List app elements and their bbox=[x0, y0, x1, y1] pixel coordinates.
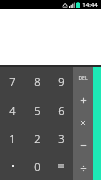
button[interactable]: 7 bbox=[0, 67, 25, 96]
staticText: 9 bbox=[58, 74, 65, 89]
button[interactable]: 3 bbox=[49, 124, 73, 152]
button[interactable]: Plus bbox=[73, 89, 93, 111]
staticText: 7 bbox=[9, 74, 16, 89]
button[interactable]: 0 bbox=[25, 152, 49, 180]
button[interactable]: Minus bbox=[73, 134, 93, 157]
staticText: 14:44 bbox=[82, 1, 98, 9]
button[interactable]: 5 bbox=[25, 96, 49, 124]
staticText: 6 bbox=[58, 103, 65, 118]
staticText: 3 bbox=[58, 131, 65, 146]
staticText: 5 bbox=[34, 103, 41, 118]
button[interactable] bbox=[49, 152, 73, 180]
staticText: 4 bbox=[9, 103, 16, 118]
staticText: 8 bbox=[34, 74, 41, 89]
button[interactable]: Divide bbox=[73, 157, 93, 180]
button[interactable] bbox=[0, 152, 25, 180]
button[interactable]: 6 bbox=[49, 96, 73, 124]
staticText: 2 bbox=[34, 131, 41, 146]
button[interactable]: 1 bbox=[0, 124, 25, 152]
button[interactable]: 9 bbox=[49, 67, 73, 96]
staticText: 1 bbox=[9, 131, 16, 146]
button[interactable]: 8 bbox=[25, 67, 49, 96]
button[interactable]: Delete bbox=[73, 67, 93, 89]
button[interactable]: Multiply bbox=[73, 111, 93, 134]
staticText: DEL bbox=[78, 75, 88, 82]
staticText: 0 bbox=[34, 159, 41, 174]
button[interactable]: 2 bbox=[25, 124, 49, 152]
button[interactable]: 4 bbox=[0, 96, 25, 124]
